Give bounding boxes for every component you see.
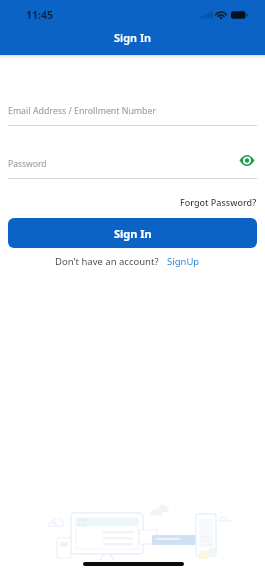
button[interactable]: Forgot Password? bbox=[180, 196, 257, 208]
staticText: SignUp bbox=[167, 255, 200, 268]
staticText: Password bbox=[8, 158, 47, 170]
button[interactable]: Email Address / Enrollment Number bbox=[0, 100, 265, 126]
button[interactable]: Sign In bbox=[8, 218, 257, 248]
staticText: 11:45 bbox=[26, 8, 53, 22]
button[interactable]: SignUp bbox=[167, 255, 200, 268]
button[interactable] bbox=[239, 154, 255, 167]
staticText: Don't have an account? bbox=[55, 255, 159, 268]
staticText: Sign In bbox=[114, 30, 152, 45]
staticText: Email Address / Enrollment Number bbox=[8, 105, 157, 117]
button[interactable]: Password bbox=[0, 153, 265, 179]
staticText: Sign In bbox=[114, 226, 152, 241]
